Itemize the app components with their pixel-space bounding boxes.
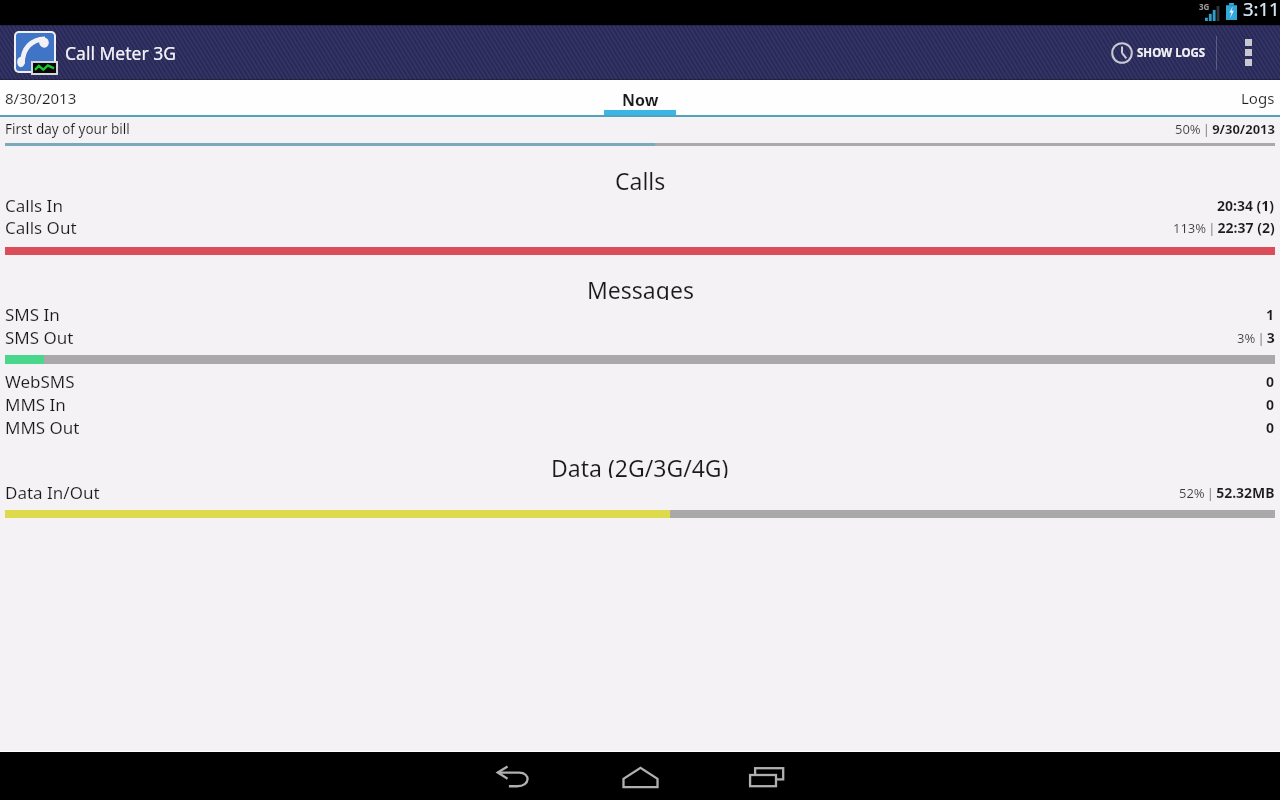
staticText: Messages <box>587 274 694 300</box>
staticText: Data In/Out <box>5 481 100 504</box>
staticText: Calls Out <box>5 216 77 239</box>
button[interactable]: SMS Out <box>0 325 1280 349</box>
staticText: Logs <box>1241 88 1275 108</box>
button[interactable]: MMS In <box>0 392 1280 416</box>
button[interactable]: Data In/Out <box>0 480 1280 504</box>
staticText: MMS Out <box>5 416 80 439</box>
staticText: 0 <box>1266 395 1275 414</box>
staticText: SMS In <box>5 303 60 326</box>
staticText: First day of your bill <box>5 120 130 138</box>
button[interactable]: Calls Out <box>0 215 1280 239</box>
staticText: 0 <box>1266 372 1275 391</box>
staticText: Data (2G/3G/4G) <box>551 452 729 478</box>
staticText: 3:11 <box>1243 0 1280 21</box>
button[interactable]: Call Meter 3G <box>0 25 192 80</box>
staticText: SHOW LOGS <box>1137 45 1206 61</box>
button[interactable]: Home <box>616 753 664 800</box>
staticText: 20:34 (1) <box>1217 196 1275 215</box>
staticText: 8/30/2013 <box>5 88 77 108</box>
staticText: 0 <box>1266 418 1275 437</box>
staticText: Calls <box>615 165 666 191</box>
staticText: MMS In <box>5 393 66 416</box>
staticText: 52% | 52.32MB <box>1179 483 1275 502</box>
button[interactable]: SHOW LOGS <box>1095 25 1216 80</box>
staticText: Now <box>622 89 659 111</box>
staticText: 1 <box>1266 305 1275 324</box>
staticText: 3% | 3 <box>1237 328 1275 347</box>
button[interactable]: 8/30/2013 <box>0 80 400 116</box>
staticText: Calls In <box>5 194 63 217</box>
staticText: Call Meter 3G <box>65 41 176 65</box>
button[interactable]: More options <box>1217 25 1280 80</box>
button[interactable]: SMS In <box>0 302 1280 326</box>
staticText: WebSMS <box>5 370 75 393</box>
button[interactable]: Back <box>489 753 537 800</box>
staticText: SMS Out <box>5 326 74 349</box>
button[interactable]: Logs <box>880 80 1280 116</box>
button[interactable]: MMS Out <box>0 415 1280 439</box>
staticText: 50% | 9/30/2013 <box>1175 120 1275 138</box>
staticText: 113% | 22:37 (2) <box>1173 218 1275 237</box>
button[interactable]: WebSMS <box>0 369 1280 393</box>
button[interactable]: Recent apps <box>743 753 791 800</box>
staticText: 3G <box>1199 1 1210 12</box>
button[interactable]: Calls In <box>0 193 1280 217</box>
button[interactable]: First day of your bill <box>0 117 1280 141</box>
button[interactable]: Now <box>540 80 740 116</box>
